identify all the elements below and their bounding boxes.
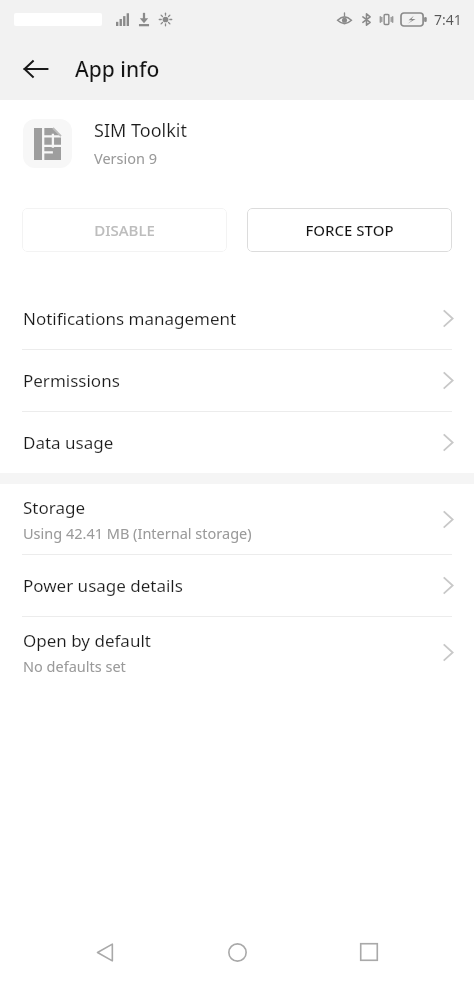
button[interactable]: Power usage details (0, 555, 474, 616)
button[interactable]: FORCE STOP (247, 208, 452, 252)
staticText: Power usage details (23, 574, 183, 597)
staticText: No defaults set (23, 656, 126, 676)
staticText: Open by default (23, 629, 151, 652)
staticText: SIM Toolkit (94, 118, 187, 143)
button[interactable]: Home (210, 925, 264, 979)
button[interactable]: Back (78, 925, 132, 979)
staticText: Data usage (23, 431, 114, 454)
staticText: App info (75, 55, 160, 84)
staticText: Using 42.41 MB (Internal storage) (23, 523, 252, 543)
button[interactable]: DISABLE (22, 208, 227, 252)
button[interactable]: Recent apps (342, 925, 396, 979)
staticText: 7:41 (434, 10, 462, 29)
staticText: Storage (23, 496, 86, 519)
button[interactable]: Permissions (0, 350, 474, 411)
staticText: Notifications management (23, 307, 237, 330)
staticText: Version 9 (94, 148, 158, 168)
button[interactable]: Notifications management (0, 288, 474, 349)
button[interactable]: Open by default (0, 617, 474, 687)
button[interactable]: Data usage (0, 412, 474, 473)
button[interactable]: Back (12, 45, 60, 93)
button[interactable]: Storage (0, 484, 474, 554)
staticText: Permissions (23, 369, 120, 392)
staticText: FORCE STOP (305, 220, 394, 240)
staticText: DISABLE (94, 220, 155, 240)
